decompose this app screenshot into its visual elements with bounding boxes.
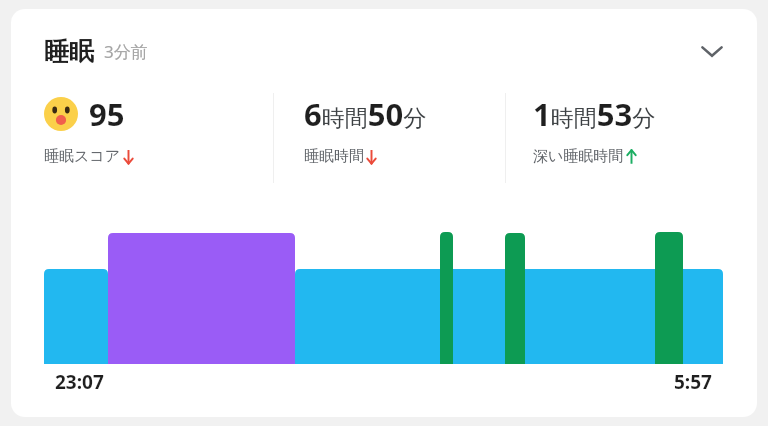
staticText: 95 — [89, 93, 125, 135]
staticText: 5:57 — [674, 369, 712, 395]
button[interactable]: 睡眠グラフ — [11, 219, 757, 369]
staticText: 睡眠スコア — [44, 147, 121, 166]
staticText: 睡眠 — [44, 36, 94, 67]
button[interactable]: 睡眠 — [11, 9, 757, 93]
staticText: 深い睡眠時間 — [533, 147, 624, 166]
staticText: 1時間53分 — [533, 93, 656, 135]
button[interactable]: 95 — [42, 93, 273, 166]
staticText: 3分前 — [104, 40, 148, 63]
staticText: 睡眠時間 — [304, 147, 364, 166]
staticText: 6時間50分 — [304, 93, 427, 135]
staticText: 23:07 — [55, 369, 104, 395]
button[interactable]: 展開 — [689, 28, 735, 74]
button[interactable]: 1時間53分 — [531, 93, 737, 166]
button[interactable]: 6時間50分 — [302, 93, 505, 166]
